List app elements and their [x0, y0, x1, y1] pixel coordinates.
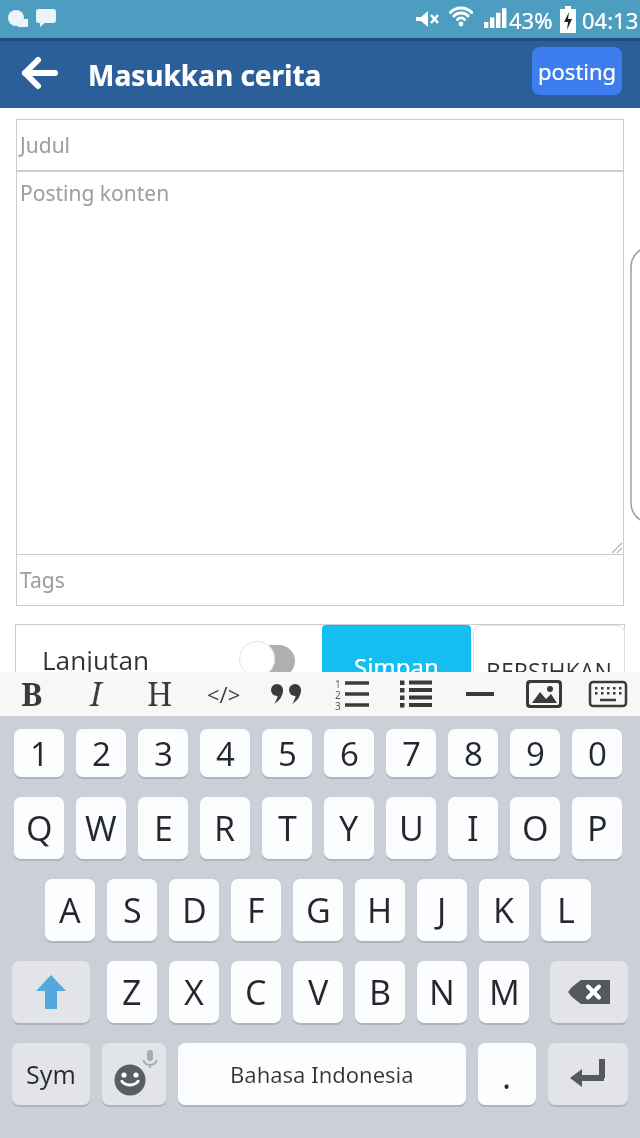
- button[interactable]: [243, 645, 295, 677]
- staticText: Z: [122, 969, 142, 1015]
- staticText: M: [489, 969, 520, 1015]
- staticText: V: [308, 969, 329, 1015]
- button[interactable]: 7: [386, 729, 436, 777]
- button[interactable]: </>: [192, 672, 256, 716]
- button[interactable]: R: [200, 797, 250, 859]
- staticText: Q: [26, 805, 53, 851]
- button[interactable]: T: [262, 797, 312, 859]
- button[interactable]: X: [169, 961, 219, 1023]
- button[interactable]: [576, 672, 640, 716]
- staticText: E: [154, 805, 173, 851]
- button[interactable]: N: [417, 961, 467, 1023]
- button[interactable]: Posting konten: [16, 171, 624, 555]
- button[interactable]: G: [293, 879, 343, 941]
- staticText: O: [522, 805, 549, 851]
- button[interactable]: S: [107, 879, 157, 941]
- button[interactable]: O: [510, 797, 560, 859]
- staticText: H: [367, 887, 393, 933]
- button[interactable]: 5: [262, 729, 312, 777]
- button[interactable]: [256, 672, 320, 716]
- button[interactable]: I: [448, 797, 498, 859]
- button[interactable]: U: [386, 797, 436, 859]
- button[interactable]: [384, 672, 448, 716]
- staticText: N: [429, 969, 455, 1015]
- button[interactable]: I: [64, 672, 128, 716]
- button[interactable]: 3: [138, 729, 188, 777]
- button[interactable]: [448, 672, 512, 716]
- staticText: 5: [278, 731, 297, 776]
- button[interactable]: Bahasa Indonesia: [178, 1043, 466, 1105]
- button[interactable]: L: [541, 879, 591, 941]
- button[interactable]: .: [478, 1043, 536, 1105]
- button[interactable]: B: [0, 672, 64, 716]
- staticText: Sym: [26, 1057, 76, 1091]
- staticText: Masukkan cerita: [88, 56, 322, 94]
- button[interactable]: H: [128, 672, 192, 716]
- button[interactable]: Judul: [16, 119, 624, 171]
- button[interactable]: 9: [510, 729, 560, 777]
- staticText: H: [147, 672, 173, 716]
- button[interactable]: 0: [572, 729, 622, 777]
- button[interactable]: Tags: [16, 554, 624, 606]
- button[interactable]: V: [293, 961, 343, 1023]
- staticText: L: [557, 887, 575, 933]
- staticText: I: [90, 672, 102, 716]
- staticText: .: [502, 1053, 512, 1099]
- button[interactable]: C: [231, 961, 281, 1023]
- staticText: 4: [216, 731, 235, 776]
- staticText: G: [306, 887, 331, 933]
- staticText: Lanjutan: [42, 642, 150, 677]
- staticText: P: [587, 805, 608, 851]
- button[interactable]: [548, 1043, 628, 1105]
- staticText: 2: [92, 731, 111, 776]
- button[interactable]: BERSIHKAN: [473, 625, 625, 683]
- button[interactable]: 1: [14, 729, 64, 777]
- staticText: S: [123, 887, 142, 933]
- staticText: Judul: [20, 131, 71, 160]
- button[interactable]: J: [417, 879, 467, 941]
- button[interactable]: D: [169, 879, 219, 941]
- button[interactable]: B: [355, 961, 405, 1023]
- staticText: 8: [464, 731, 483, 776]
- button[interactable]: M: [479, 961, 529, 1023]
- button[interactable]: K: [479, 879, 529, 941]
- button[interactable]: E: [138, 797, 188, 859]
- button[interactable]: A: [45, 879, 95, 941]
- staticText: Tags: [20, 566, 65, 595]
- button[interactable]: [512, 672, 576, 716]
- button[interactable]: 1 2 3: [320, 672, 384, 716]
- staticText: T: [278, 805, 297, 851]
- button[interactable]: [14, 38, 66, 108]
- button[interactable]: [12, 961, 90, 1023]
- staticText: 9: [526, 731, 545, 776]
- button[interactable]: Sym: [12, 1043, 90, 1105]
- staticText: BERSIHKAN: [486, 655, 612, 683]
- staticText: posting: [538, 56, 617, 86]
- staticText: Posting konten: [20, 179, 170, 208]
- button[interactable]: Simpan: [322, 625, 471, 683]
- button[interactable]: [102, 1043, 166, 1105]
- button[interactable]: F: [231, 879, 281, 941]
- button[interactable]: 4: [200, 729, 250, 777]
- button[interactable]: Q: [14, 797, 64, 859]
- button[interactable]: Z: [107, 961, 157, 1023]
- button[interactable]: 2: [76, 729, 126, 777]
- button[interactable]: P: [572, 797, 622, 859]
- button[interactable]: 6: [324, 729, 374, 777]
- staticText: K: [493, 887, 515, 933]
- staticText: U: [399, 805, 424, 851]
- button[interactable]: Y: [324, 797, 374, 859]
- staticText: F: [247, 887, 265, 933]
- staticText: Simpan: [354, 650, 439, 683]
- button[interactable]: W: [76, 797, 126, 859]
- staticText: D: [182, 887, 207, 933]
- staticText: C: [245, 969, 267, 1015]
- staticText: 04:13: [582, 5, 639, 35]
- staticText: A: [59, 887, 81, 933]
- staticText: B: [21, 672, 43, 716]
- staticText: 43%: [509, 5, 553, 35]
- button[interactable]: posting: [532, 47, 622, 95]
- button[interactable]: H: [355, 879, 405, 941]
- button[interactable]: [550, 961, 628, 1023]
- button[interactable]: 8: [448, 729, 498, 777]
